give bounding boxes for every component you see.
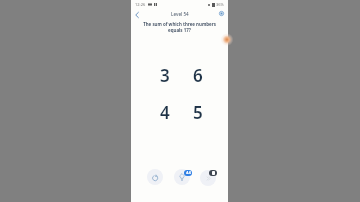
staticText: 4 <box>160 101 170 121</box>
button[interactable]: Back <box>132 10 142 20</box>
button[interactable]: 5 <box>190 101 206 121</box>
staticText: 6 <box>193 64 203 84</box>
button[interactable]: Settings <box>217 9 226 18</box>
staticText: 44 <box>186 170 191 176</box>
button[interactable]: Skip <box>200 170 216 186</box>
staticText: The sum of which three numbers equals 17… <box>134 21 225 33</box>
staticText: 36% <box>216 2 224 7</box>
button[interactable]: 6 <box>190 64 206 84</box>
button[interactable]: Restart <box>147 169 163 185</box>
button[interactable]: 3 <box>157 64 173 84</box>
staticText: Level 54 <box>171 11 189 17</box>
staticText: 12:26 <box>135 2 146 7</box>
button[interactable]: Hint <box>174 169 190 185</box>
staticText: 3 <box>160 64 170 84</box>
button[interactable]: 4 <box>157 101 173 121</box>
staticText: 5 <box>193 101 203 121</box>
